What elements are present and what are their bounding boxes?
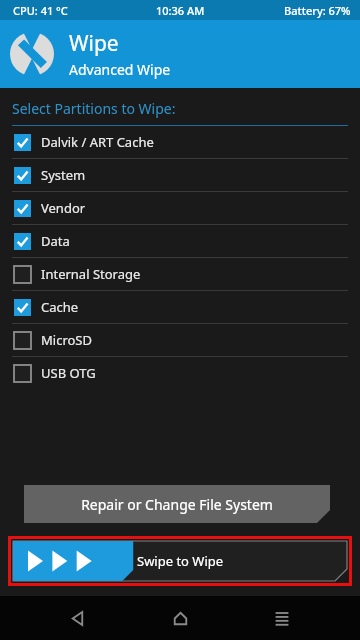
staticText: Internal Storage bbox=[41, 265, 141, 283]
button[interactable]: Swipe to Wipe bbox=[13, 541, 347, 581]
button[interactable]: Data bbox=[0, 225, 360, 257]
staticText: Data bbox=[41, 232, 70, 250]
button[interactable]: Home bbox=[156, 596, 204, 640]
button[interactable]: Dalvik / ART Cache bbox=[0, 126, 360, 158]
staticText: MicroSD bbox=[41, 331, 92, 349]
button[interactable]: Internal Storage bbox=[0, 258, 360, 290]
staticText: USB OTG bbox=[41, 364, 96, 382]
button[interactable]: Menu bbox=[258, 596, 306, 640]
button[interactable]: MicroSD bbox=[0, 324, 360, 356]
button[interactable]: System bbox=[0, 159, 360, 191]
staticText: Wipe bbox=[69, 29, 119, 58]
staticText: Battery: 67% bbox=[284, 3, 351, 18]
button[interactable]: USB OTG bbox=[0, 357, 360, 389]
staticText: Select Partitions to Wipe: bbox=[12, 99, 176, 118]
staticText: Repair or Change File System bbox=[81, 495, 273, 514]
staticText: Cache bbox=[41, 298, 79, 316]
staticText: Advanced Wipe bbox=[69, 60, 171, 79]
staticText: System bbox=[41, 166, 86, 184]
button[interactable]: Back bbox=[54, 596, 102, 640]
button[interactable]: Wipe bbox=[0, 20, 360, 88]
staticText: Dalvik / ART Cache bbox=[41, 133, 154, 151]
staticText: Vendor bbox=[41, 199, 86, 217]
staticText: 10:36 AM bbox=[156, 3, 205, 18]
staticText: CPU: 41 °C bbox=[13, 3, 68, 18]
staticText: Swipe to Wipe bbox=[137, 552, 224, 570]
button[interactable]: Vendor bbox=[0, 192, 360, 224]
button[interactable]: Cache bbox=[0, 291, 360, 323]
button[interactable]: Repair or Change File System bbox=[24, 485, 330, 523]
